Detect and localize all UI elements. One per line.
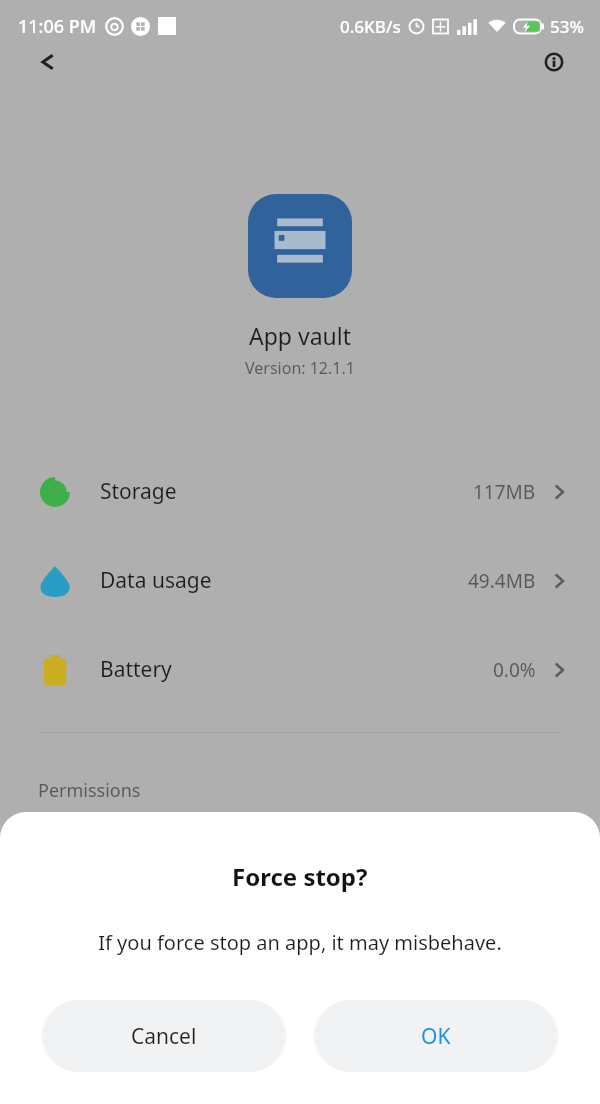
button[interactable]: Data usage — [0, 536, 600, 625]
staticText: Storage — [100, 477, 177, 506]
staticText: 117MB — [473, 479, 536, 505]
staticText: Cancel — [131, 1022, 197, 1051]
staticText: 53% — [550, 15, 584, 38]
staticText: Data usage — [100, 566, 212, 595]
staticText: App vault — [249, 320, 352, 351]
button[interactable]: Back — [22, 52, 74, 72]
button[interactable]: App info — [528, 52, 580, 72]
staticText: OK — [421, 1022, 451, 1051]
staticText: 0.0% — [493, 657, 536, 683]
staticText: Permissions — [38, 778, 141, 803]
button[interactable]: OK — [314, 1000, 558, 1072]
staticText: Version: 12.1.1 — [245, 357, 355, 379]
staticText: Battery — [100, 655, 172, 684]
staticText: 11:06 PM — [18, 14, 97, 39]
staticText: Force stop? — [232, 860, 368, 893]
staticText: If you force stop an app, it may misbeha… — [98, 929, 502, 956]
staticText: 0.6KB/s — [340, 15, 401, 38]
staticText: 49.4MB — [468, 568, 536, 594]
button[interactable]: Storage — [0, 447, 600, 536]
button[interactable]: Battery — [0, 625, 600, 714]
button[interactable]: Cancel — [42, 1000, 286, 1072]
